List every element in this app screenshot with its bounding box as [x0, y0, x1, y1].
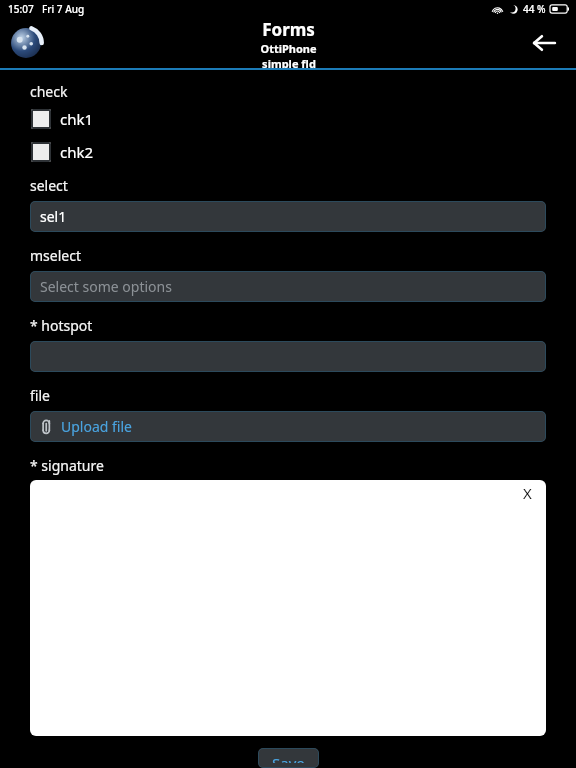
staticText: * signature [30, 456, 104, 475]
staticText: file [30, 386, 50, 405]
button[interactable]: Clear signature [30, 480, 546, 736]
staticText: chk2 [60, 142, 94, 162]
button[interactable]: chk2 [31, 142, 94, 162]
staticText: 15:07 [8, 2, 34, 16]
staticText: * hotspot [30, 316, 93, 335]
button[interactable] [30, 341, 546, 372]
staticText: 44 % [523, 2, 546, 16]
staticText: sel1 [40, 207, 67, 226]
staticText: select [30, 176, 68, 195]
button[interactable]: App icon [6, 23, 46, 63]
button[interactable]: Upload file [30, 411, 546, 442]
staticText: Select some options [40, 277, 172, 296]
button[interactable]: Save [258, 748, 319, 768]
staticText: mselect [30, 246, 81, 265]
staticText: Upload file [61, 417, 132, 436]
staticText: X [523, 483, 532, 503]
button[interactable]: Clear signature [515, 481, 539, 505]
staticText: OttiPhone [260, 41, 317, 56]
button[interactable]: Select some options [30, 271, 546, 302]
staticText: chk1 [60, 109, 94, 129]
staticText: check [30, 82, 68, 101]
staticText: Save [272, 753, 305, 763]
button[interactable]: Back [524, 23, 564, 63]
button[interactable]: sel1 [30, 201, 546, 232]
button[interactable]: chk1 [31, 109, 94, 129]
staticText: simple fld [262, 56, 316, 68]
staticText: Forms [262, 18, 315, 41]
staticText: Fri 7 Aug [42, 2, 85, 16]
